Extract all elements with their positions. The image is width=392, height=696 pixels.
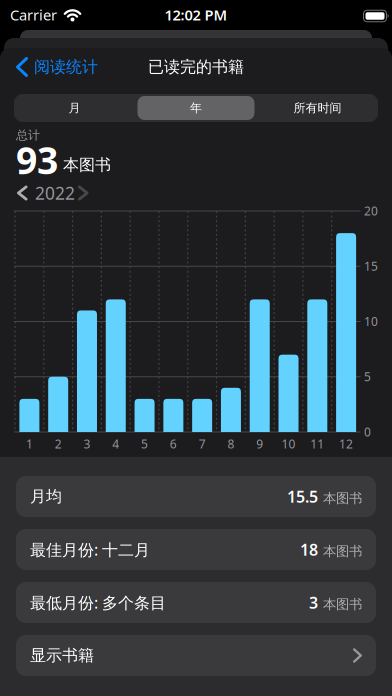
- staticText: 8: [227, 436, 234, 452]
- staticText: Carrier: [10, 5, 57, 24]
- button[interactable]: 年: [135, 94, 256, 122]
- staticText: 18: [300, 539, 318, 560]
- staticText: 最佳月份: 十二月: [30, 539, 150, 560]
- button[interactable]: 月: [14, 94, 135, 122]
- staticText: 15.5: [287, 486, 318, 507]
- staticText: 阅读统计: [34, 57, 98, 77]
- staticText: 10: [364, 313, 378, 329]
- staticText: 本图书: [323, 596, 362, 612]
- staticText: 2: [55, 436, 62, 452]
- staticText: 5: [364, 369, 371, 385]
- staticText: 月均: [30, 487, 62, 506]
- staticText: 最低月份: 多个条目: [30, 592, 166, 613]
- staticText: 3: [83, 436, 90, 452]
- staticText: 0: [364, 424, 371, 440]
- staticText: 9: [256, 436, 263, 452]
- button[interactable]: 所有时间: [257, 94, 378, 122]
- staticText: 4: [112, 436, 119, 452]
- staticText: 2022: [35, 181, 75, 204]
- staticText: 93: [16, 135, 58, 185]
- staticText: 11: [310, 436, 324, 452]
- staticText: 15: [364, 258, 378, 274]
- staticText: 月: [68, 101, 80, 115]
- staticText: 12:02 PM: [164, 5, 227, 24]
- staticText: 总计: [16, 128, 40, 143]
- staticText: 显示书籍: [30, 646, 94, 665]
- staticText: 本图书: [323, 543, 362, 559]
- staticText: 6: [170, 436, 177, 452]
- button[interactable]: 上一年: [13, 181, 31, 204]
- staticText: 10: [281, 436, 295, 452]
- button[interactable]: 返回 阅读统计: [0, 50, 106, 84]
- staticText: 1: [26, 436, 33, 452]
- staticText: 12: [339, 436, 353, 452]
- staticText: 5: [141, 436, 148, 452]
- staticText: 本图书: [323, 490, 362, 506]
- staticText: 20: [364, 203, 378, 219]
- staticText: 本图书: [63, 155, 111, 175]
- staticText: 3: [309, 592, 318, 613]
- staticText: 7: [199, 436, 206, 452]
- staticText: 已读完的书籍: [148, 57, 244, 77]
- staticText: 年: [190, 101, 202, 115]
- staticText: 所有时间: [293, 101, 341, 115]
- button[interactable]: 下一年: [74, 181, 92, 204]
- button[interactable]: 显示书籍: [16, 635, 376, 676]
